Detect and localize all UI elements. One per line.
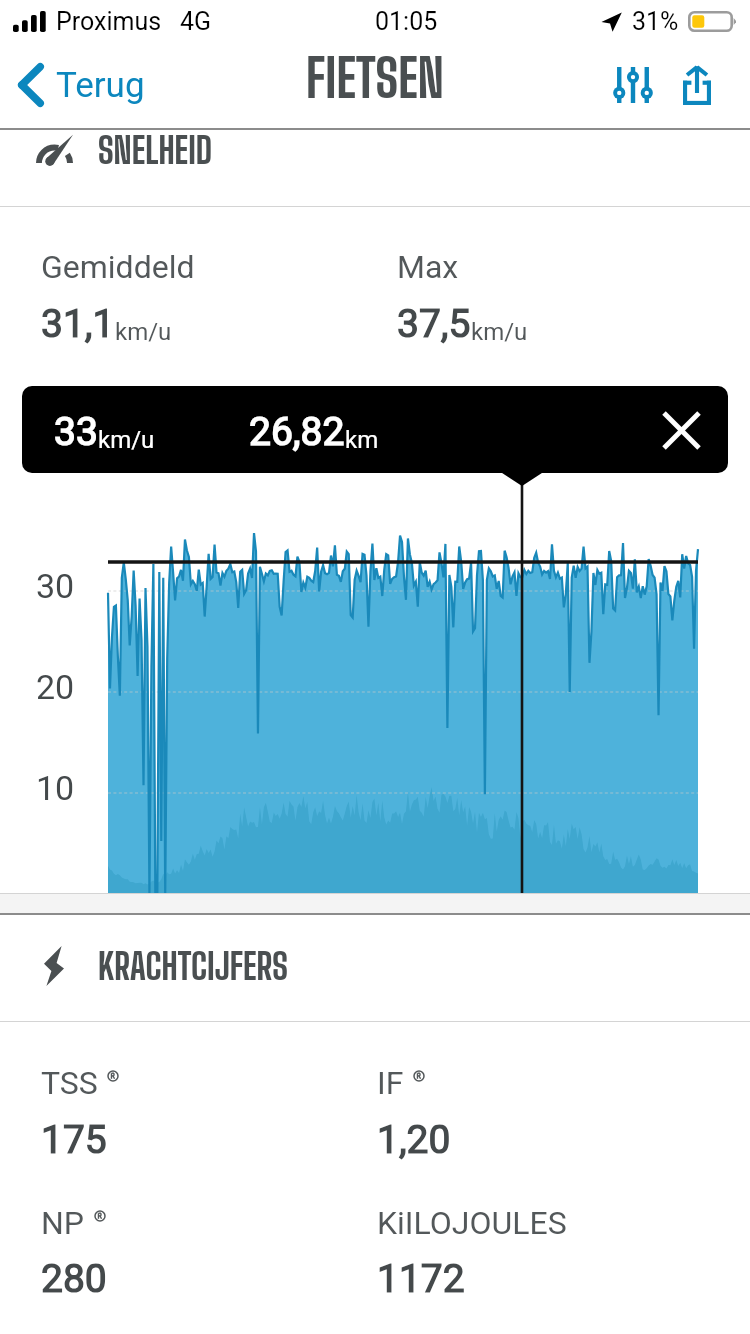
staticText: Gemiddeld (41, 248, 195, 286)
staticText: 31% (632, 7, 679, 36)
staticText: 37,5 (397, 301, 471, 347)
staticText: SNELHEID (98, 129, 213, 172)
button[interactable]: Terug (0, 63, 159, 107)
staticText: IF (377, 1064, 404, 1102)
staticText: 1,20 (377, 1117, 451, 1163)
staticText: 280 (41, 1256, 107, 1302)
staticText: FIETSEN (306, 47, 444, 109)
staticText: 20 (36, 667, 75, 707)
staticText: km/u (115, 318, 172, 346)
staticText: 1172 (377, 1256, 465, 1302)
staticText: km/u (98, 426, 155, 454)
staticText: 30 (36, 566, 75, 606)
staticText: km (345, 426, 379, 454)
staticText: 31,1 (41, 301, 115, 347)
staticText: Max (397, 248, 459, 286)
staticText: 33 (54, 409, 98, 455)
staticText: TSS (41, 1064, 98, 1102)
button[interactable]: Instellingen (604, 56, 662, 114)
staticText: KiILOJOULES (377, 1204, 567, 1242)
staticText: Proximus (56, 7, 162, 36)
staticText: Terug (56, 65, 145, 106)
staticText: NP (41, 1204, 85, 1242)
staticText: 26,82 (249, 409, 345, 455)
staticText: KRACHTCIJFERS (98, 945, 288, 988)
button[interactable]: Sluiten (654, 403, 708, 457)
staticText: km/u (471, 318, 528, 346)
staticText: 01:05 (375, 7, 438, 36)
staticText: 175 (41, 1117, 107, 1163)
staticText: 4G (180, 7, 212, 36)
button[interactable]: Delen (668, 56, 726, 114)
staticText: 10 (36, 768, 75, 808)
